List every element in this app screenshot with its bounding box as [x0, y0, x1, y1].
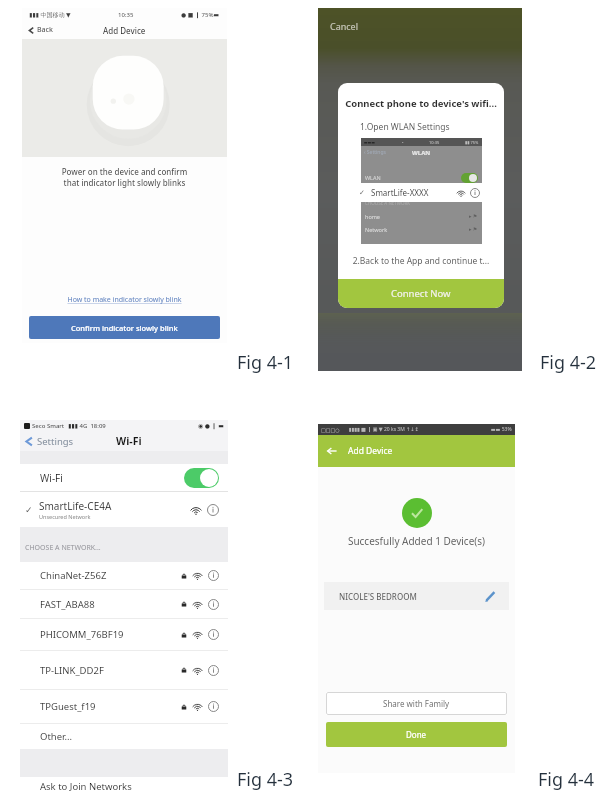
staticText: Done: [406, 729, 427, 740]
staticText: 10:35: [118, 11, 134, 19]
button[interactable]: Back: [327, 446, 337, 456]
staticText: CHOOSE A NETWORK: [365, 200, 411, 206]
staticText: Connect phone to device's wifi...: [343, 97, 499, 110]
button[interactable]: FAST_ABA88: [40, 590, 219, 618]
staticText: ▬▬ 53%: [491, 426, 512, 433]
staticText: ▬▬▬: [364, 140, 376, 145]
button[interactable]: NICOLE'S BEDROOM: [339, 582, 497, 610]
staticText: WLAN: [365, 174, 381, 181]
staticText: Other...: [40, 730, 73, 743]
staticText: ◉ ● ❙ ▬: [198, 422, 224, 430]
staticText: Share with Family: [383, 698, 450, 709]
button[interactable]: Edit name: [484, 590, 497, 603]
staticText: Back: [37, 25, 53, 35]
staticText: ● ■ ❙ 75%▬: [181, 11, 220, 19]
button[interactable]: How to make indicator slowly blink: [22, 295, 227, 305]
button[interactable]: Back to Settings: [24, 435, 74, 448]
button[interactable]: TPGuest_f19: [40, 690, 219, 723]
button[interactable]: ✓: [25, 492, 219, 527]
staticText: FAST_ABA88: [40, 598, 95, 611]
staticText: ✓: [25, 505, 33, 515]
button[interactable]: Share with Family: [326, 692, 507, 715]
button[interactable]: Connect Now: [338, 279, 504, 308]
staticText: •: [402, 140, 404, 145]
staticText: 2.Back to the App and continue t...: [343, 255, 499, 267]
staticText: 1.Open WLAN Settings: [360, 121, 450, 133]
staticText: Ask to Join Networks: [40, 780, 132, 793]
staticText: Confirm indicator slowly blink: [71, 323, 178, 333]
button[interactable]: Done: [326, 722, 507, 747]
staticText: ‹ Settings: [364, 149, 386, 156]
staticText: Power on the device and confirm that ind…: [22, 166, 227, 189]
button[interactable]: PHICOMM_76BF19: [40, 619, 219, 650]
staticText: ▮▮▮ 4G 18:09: [68, 422, 106, 430]
button[interactable]: TP-LINK_DD2F: [40, 651, 219, 689]
staticText: Connect Now: [391, 287, 451, 300]
staticText: Seco Smart: [32, 422, 65, 430]
staticText: ▮▮▮ 中国移动 ▼: [29, 11, 71, 19]
staticText: home: [365, 213, 380, 220]
button[interactable]: ChinaNet-Z56Z: [40, 562, 219, 589]
staticText: 10:35: [429, 140, 440, 145]
button[interactable]: Other...: [40, 724, 228, 749]
staticText: ▸ ⚑: [469, 226, 478, 233]
staticText: NICOLE'S BEDROOM: [339, 591, 417, 602]
staticText: ChinaNet-Z56Z: [40, 569, 107, 582]
staticText: Fig 4-3: [237, 767, 294, 792]
button[interactable]: Cancel: [330, 20, 359, 32]
staticText: SmartLife-XXXX: [371, 187, 429, 198]
staticText: Unsecured Network: [39, 513, 91, 520]
staticText: Add Device: [103, 25, 146, 36]
staticText: Settings: [37, 435, 74, 448]
staticText: CHOOSE A NETWORK...: [25, 543, 101, 553]
button[interactable]: Wi-Fi on: [184, 468, 219, 488]
staticText: ▮▮ 75%: [465, 140, 479, 145]
button[interactable]: ✓: [352, 183, 488, 202]
staticText: Wi-Fi: [116, 434, 142, 448]
staticText: Network: [365, 226, 388, 233]
staticText: Fig 4-1: [237, 350, 294, 375]
staticText: Add Device: [348, 445, 393, 457]
button[interactable]: Back: [28, 25, 53, 35]
staticText: ✓: [359, 189, 365, 197]
staticText: Wi-Fi: [40, 471, 63, 485]
staticText: ▮▮▮▮ ■ ❙ ▣ ▼ 20 ks 3M ↑↓↕: [349, 426, 419, 433]
staticText: SmartLife-CE4A: [39, 499, 112, 513]
staticText: TP-LINK_DD2F: [40, 664, 104, 677]
staticText: Succesfully Added 1 Device(s): [318, 534, 515, 548]
staticText: □□□○: [321, 427, 340, 433]
staticText: PHICOMM_76BF19: [40, 628, 124, 641]
staticText: Fig 4-4: [538, 767, 595, 792]
staticText: ▸ ⚑: [469, 213, 478, 220]
button[interactable]: Ask to Join Networks: [40, 777, 219, 796]
button[interactable]: Confirm indicator slowly blink: [29, 316, 220, 339]
button[interactable]: Wi-Fi: [40, 464, 219, 491]
staticText: WLAN: [412, 149, 431, 157]
staticText: Fig 4-2: [540, 350, 597, 375]
staticText: TPGuest_f19: [40, 700, 96, 713]
